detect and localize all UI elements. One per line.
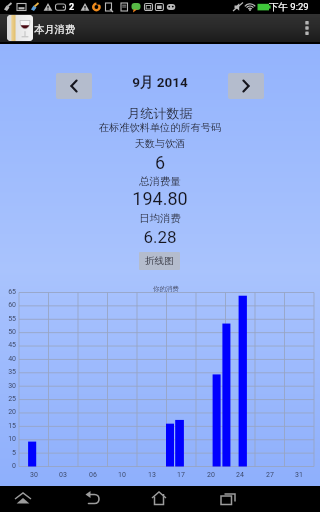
button[interactable]: Back	[58, 486, 126, 512]
staticText: 31	[289, 471, 309, 479]
staticText: 45	[0, 341, 16, 349]
staticText: 25	[0, 395, 16, 403]
button[interactable]: Next month	[228, 73, 264, 99]
staticText: 日均消费	[0, 212, 320, 225]
staticText: 30	[0, 382, 16, 390]
button[interactable]: App icon, navigate up	[7, 15, 33, 41]
staticText: 15	[0, 422, 16, 430]
staticText: 9月 2014	[0, 74, 320, 91]
button[interactable]: Recent apps	[194, 486, 262, 512]
staticText: 0	[0, 462, 16, 470]
staticText: 2	[69, 2, 75, 13]
staticText: 30	[24, 471, 44, 479]
staticText: 60	[0, 301, 16, 309]
button[interactable]: 折线图	[139, 252, 180, 270]
staticText: 35	[0, 368, 16, 376]
staticText: 本月消费	[34, 23, 76, 36]
staticText: 你的消费	[153, 285, 179, 293]
button[interactable]: Previous month	[56, 73, 92, 99]
staticText: 50	[0, 328, 16, 336]
button[interactable]: More options	[294, 14, 320, 42]
staticText: 总消费量	[0, 175, 320, 188]
staticText: 40	[0, 355, 16, 363]
staticText: 10	[112, 471, 132, 479]
staticText: 13	[142, 471, 162, 479]
staticText: 06	[83, 471, 103, 479]
staticText: 65	[0, 288, 16, 296]
staticText: 6.28	[0, 227, 320, 247]
staticText: 10	[0, 435, 16, 443]
staticText: 5	[0, 449, 16, 457]
staticText: 194.80	[0, 188, 320, 209]
staticText: 下午 9:29	[269, 1, 309, 13]
staticText: 折线图	[145, 255, 174, 267]
staticText: 55	[0, 315, 16, 323]
button[interactable]: Navigate up	[0, 486, 57, 512]
staticText: 在标准饮料单位的所有号码	[0, 121, 320, 134]
staticText: 20	[0, 408, 16, 416]
staticText: 6	[0, 152, 320, 173]
staticText: 月统计数据	[0, 105, 320, 121]
staticText: 天数与饮酒	[0, 137, 320, 150]
staticText: 27	[260, 471, 280, 479]
staticText: 03	[53, 471, 73, 479]
staticText: 24	[230, 471, 250, 479]
button[interactable]: Home	[125, 486, 193, 512]
staticText: 17	[171, 471, 191, 479]
staticText: 20	[201, 471, 221, 479]
